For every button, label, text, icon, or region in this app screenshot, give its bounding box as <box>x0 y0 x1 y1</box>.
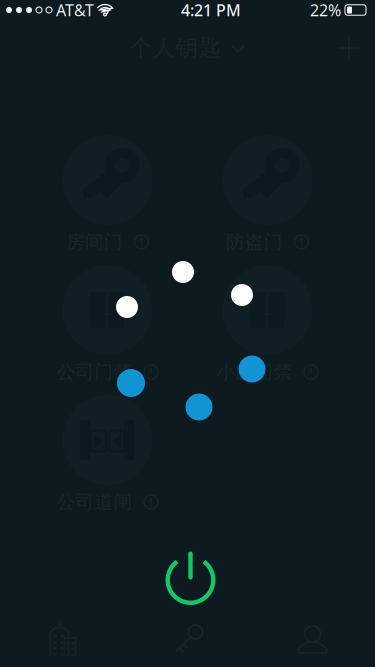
button[interactable]: Unlock <box>153 543 227 617</box>
staticText: 22% <box>310 0 341 21</box>
button[interactable]: 公司门禁 <box>27 265 187 395</box>
staticText: 公司道闸 <box>56 490 132 513</box>
staticText: 公司门禁 <box>56 360 132 383</box>
button[interactable]: 小区门禁 <box>187 265 347 395</box>
staticText: 4:21 PM <box>181 0 241 21</box>
button[interactable]: 房间门 <box>27 135 187 265</box>
staticText: 房间门 <box>66 230 123 253</box>
staticText: 个人钥匙 <box>129 34 221 62</box>
button[interactable]: 公司道闸 <box>27 395 187 525</box>
staticText: 防盗门 <box>226 230 283 253</box>
staticText: AT&T <box>56 0 94 21</box>
staticText: 小区门禁 <box>216 360 292 383</box>
button[interactable]: 防盗门 <box>187 135 347 265</box>
